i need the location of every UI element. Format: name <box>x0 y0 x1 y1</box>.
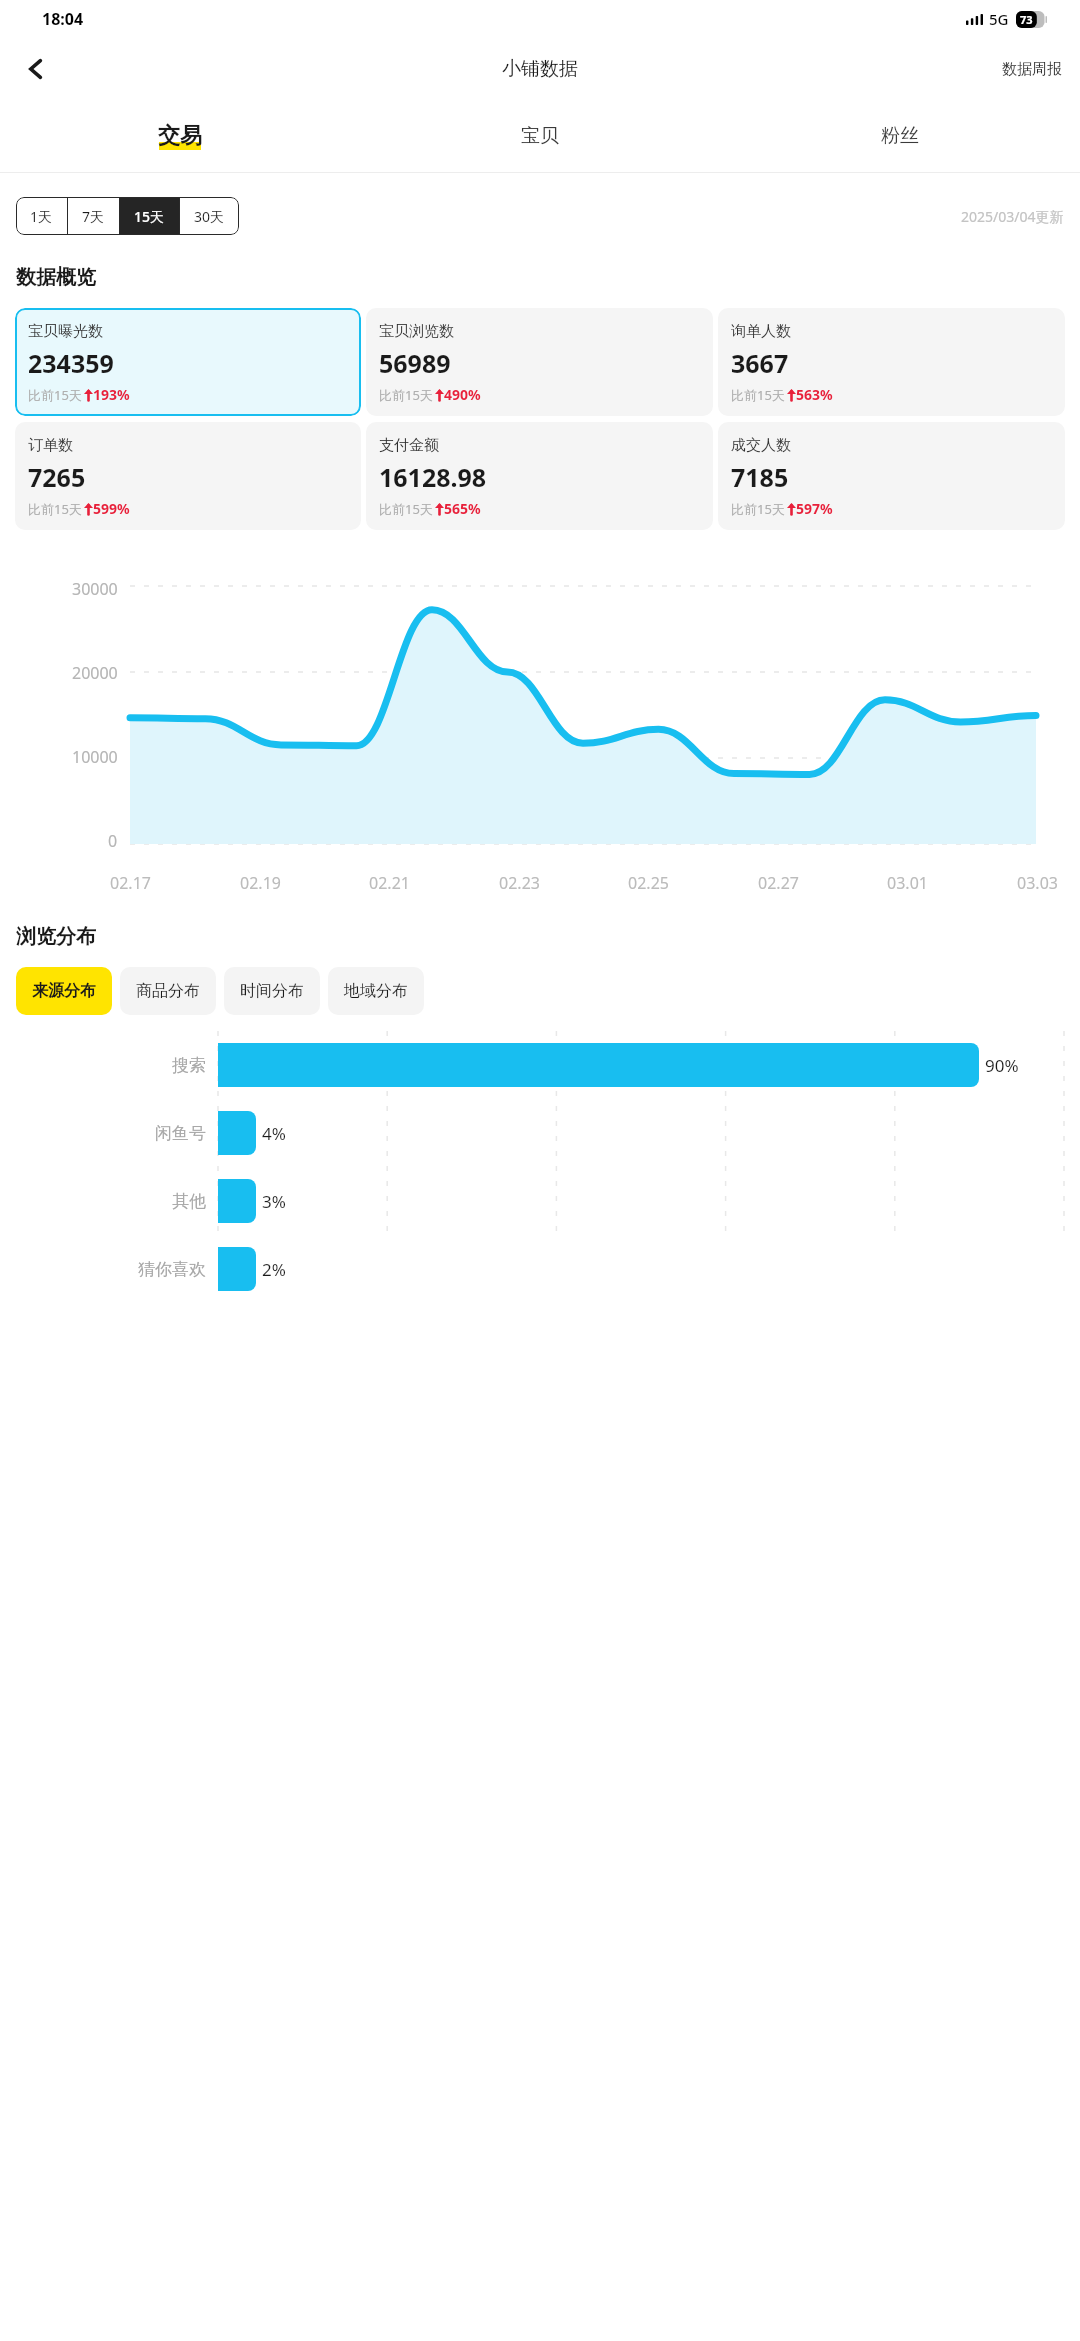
staticText: 7265 <box>28 460 86 494</box>
staticText: 商品分布 <box>136 981 200 1001</box>
button[interactable]: 宝贝曝光数 <box>15 308 361 416</box>
staticText: 比前15天 <box>379 386 433 404</box>
staticText: 搜索 <box>172 1055 206 1076</box>
staticText: 交易 <box>158 122 202 150</box>
staticText: 数据周报 <box>1002 60 1062 79</box>
staticText: 粉丝 <box>881 124 919 148</box>
staticText: 02.27 <box>758 872 799 894</box>
button[interactable]: 1天 <box>16 197 67 235</box>
staticText: 7185 <box>731 460 789 494</box>
staticText: 565% <box>444 499 481 518</box>
staticText: 73 <box>1020 12 1033 27</box>
staticText: 来源分布 <box>32 981 96 1001</box>
staticText: 02.17 <box>110 872 151 894</box>
staticText: 比前15天 <box>28 500 82 518</box>
button[interactable]: 15天 <box>120 197 179 235</box>
button[interactable]: 来源分布 <box>16 967 112 1015</box>
button[interactable]: 宝贝浏览数 <box>366 308 713 416</box>
staticText: 闲鱼号 <box>155 1123 206 1144</box>
staticText: 20000 <box>72 662 118 684</box>
staticText: 其他 <box>172 1191 206 1212</box>
staticText: 比前15天 <box>731 500 785 518</box>
staticText: 宝贝浏览数 <box>379 322 454 341</box>
staticText: 02.19 <box>240 872 281 894</box>
staticText: 浏览分布 <box>16 924 96 949</box>
staticText: 成交人数 <box>731 436 791 455</box>
button[interactable]: 成交人数 <box>718 422 1065 530</box>
button[interactable]: 30天 <box>180 197 239 235</box>
staticText: 234359 <box>28 346 114 380</box>
button[interactable]: 支付金额 <box>366 422 713 530</box>
staticText: 30000 <box>72 578 118 600</box>
button[interactable]: 时间分布 <box>224 967 320 1015</box>
staticText: 597% <box>796 499 833 518</box>
staticText: 5G <box>989 9 1009 29</box>
staticText: 询单人数 <box>731 322 791 341</box>
button[interactable]: 订单数 <box>15 422 361 530</box>
staticText: 1天 <box>30 207 53 226</box>
button[interactable]: 数据周报 <box>984 50 1080 89</box>
button[interactable]: 地域分布 <box>328 967 424 1015</box>
staticText: 3667 <box>731 346 789 380</box>
button[interactable]: 宝贝 <box>360 100 720 172</box>
staticText: 比前15天 <box>28 386 82 404</box>
staticText: 3% <box>262 1190 286 1213</box>
staticText: 599% <box>93 499 130 518</box>
staticText: 数据概览 <box>16 265 96 290</box>
staticText: 03.03 <box>1017 872 1058 894</box>
button[interactable]: 7天 <box>68 197 119 235</box>
staticText: 宝贝曝光数 <box>28 322 103 341</box>
staticText: 18:04 <box>42 8 84 30</box>
staticText: 16128.98 <box>379 460 487 494</box>
staticText: 563% <box>796 385 833 404</box>
staticText: 时间分布 <box>240 981 304 1001</box>
staticText: 10000 <box>72 746 118 768</box>
button[interactable]: 交易 <box>0 100 360 172</box>
staticText: 支付金额 <box>379 436 439 455</box>
staticText: 比前15天 <box>379 500 433 518</box>
staticText: 比前15天 <box>731 386 785 404</box>
staticText: 15天 <box>134 207 165 226</box>
staticText: 4% <box>262 1122 286 1145</box>
button[interactable]: 粉丝 <box>720 100 1080 172</box>
staticText: 地域分布 <box>344 981 408 1001</box>
staticText: 90% <box>985 1054 1019 1077</box>
staticText: 56989 <box>379 346 451 380</box>
button[interactable]: 询单人数 <box>718 308 1065 416</box>
staticText: 订单数 <box>28 436 73 455</box>
staticText: 02.23 <box>499 872 540 894</box>
button[interactable]: Back <box>12 45 60 93</box>
staticText: 193% <box>93 385 130 404</box>
staticText: 猜你喜欢 <box>138 1259 206 1280</box>
staticText: 0 <box>108 830 118 852</box>
staticText: 7天 <box>82 207 105 226</box>
staticText: 2% <box>262 1258 286 1281</box>
staticText: 02.21 <box>369 872 410 894</box>
staticText: 30天 <box>194 207 225 226</box>
staticText: 03.01 <box>887 872 928 894</box>
staticText: 小铺数据 <box>502 57 578 81</box>
button[interactable]: 商品分布 <box>120 967 216 1015</box>
staticText: 490% <box>444 385 481 404</box>
staticText: 宝贝 <box>521 124 559 148</box>
staticText: 02.25 <box>628 872 669 894</box>
staticText: 2025/03/04更新 <box>961 207 1064 226</box>
